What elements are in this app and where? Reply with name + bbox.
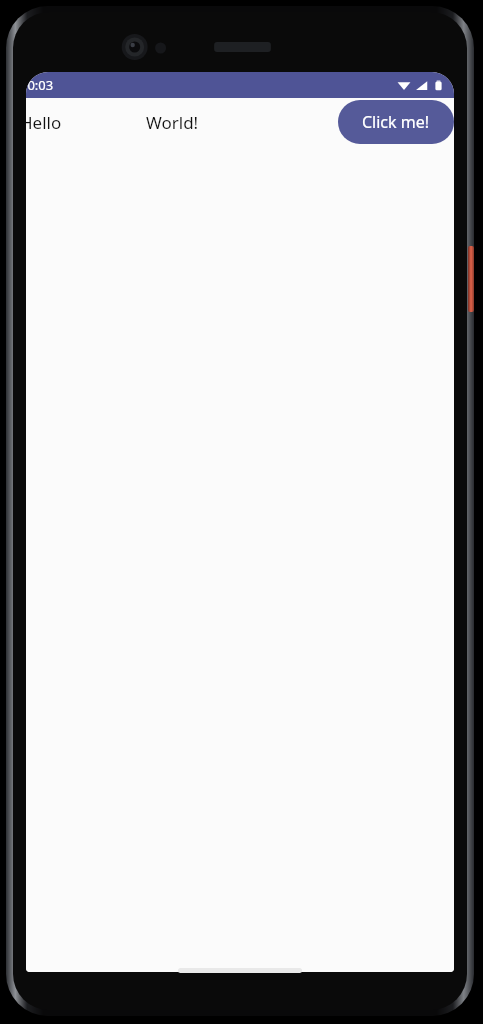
staticText: Click me! (362, 111, 430, 133)
staticText: Hello (26, 111, 62, 134)
button[interactable]: Click me! (338, 100, 454, 144)
staticText: World! (146, 111, 199, 134)
staticText: 10:03 (26, 76, 54, 94)
other: Home (178, 968, 302, 973)
